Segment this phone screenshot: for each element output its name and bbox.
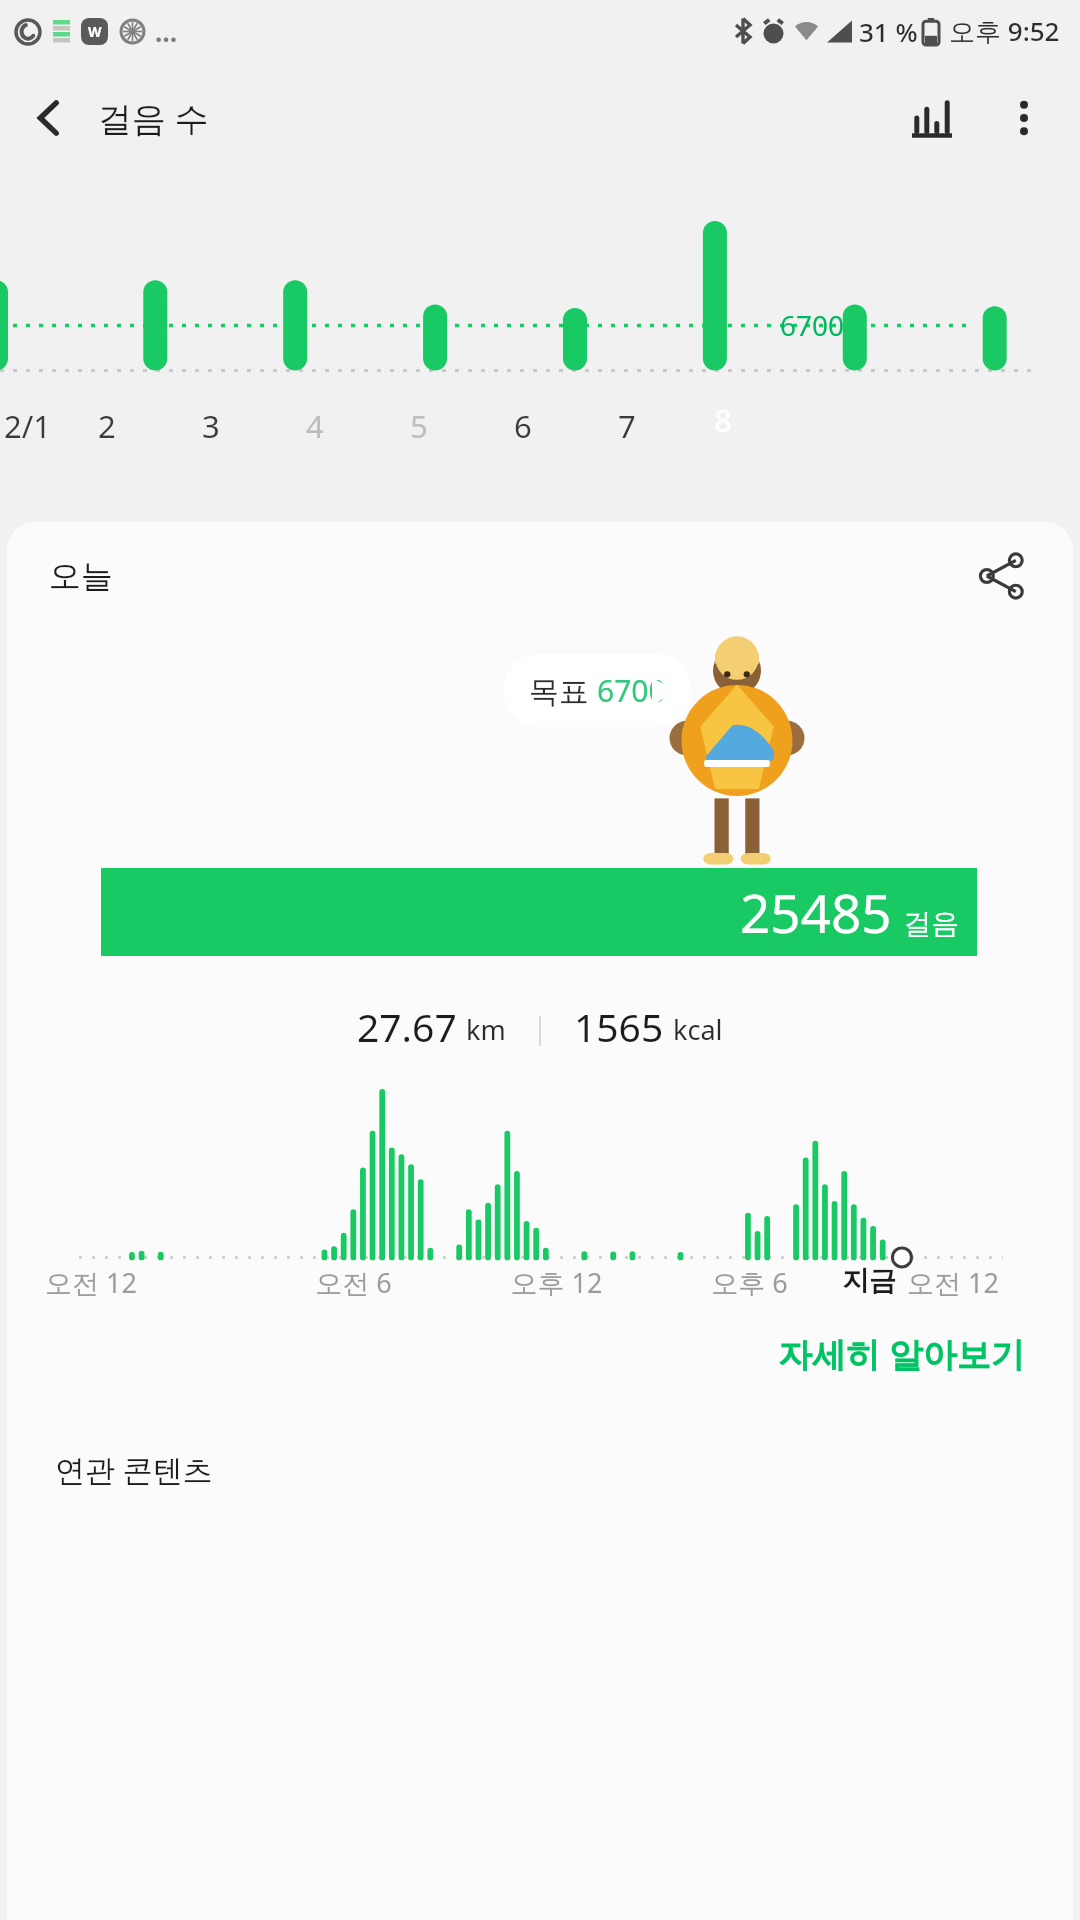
staticText: W <box>88 22 102 41</box>
button[interactable]: 7 <box>575 402 679 450</box>
staticText: 4 <box>306 405 324 447</box>
staticText: 걸음 수 <box>98 95 209 141</box>
staticText: 자세히 알아보기 <box>778 1331 1025 1377</box>
staticText: 오후 12 <box>456 1264 657 1301</box>
staticText: kcal <box>673 1011 723 1048</box>
staticText: 걸음 <box>903 906 959 941</box>
button[interactable]: 6 <box>471 402 575 450</box>
staticText: 오후 9:52 <box>949 13 1060 49</box>
staticText: 2/1 <box>4 405 51 447</box>
staticText: 6700 <box>597 670 666 711</box>
staticText: 27.67 <box>357 1000 457 1053</box>
staticText: 오전 12 <box>907 1264 999 1301</box>
staticText: 25485 <box>740 876 892 948</box>
staticText: 3 <box>202 405 220 447</box>
staticText: 목표 <box>529 670 597 711</box>
staticText: 2 <box>98 405 116 447</box>
staticText: 오전 6 <box>251 1264 456 1301</box>
staticText: 연관 콘텐츠 <box>55 1449 213 1490</box>
button[interactable]: 목표 <box>504 654 691 727</box>
staticText: 오전 12 <box>45 1264 251 1301</box>
button[interactable]: 25485 <box>101 868 977 956</box>
staticText: 지금 <box>842 1264 896 1298</box>
staticText: 6700 <box>780 306 845 344</box>
staticText: 오늘 <box>49 556 113 596</box>
staticText: 31 % <box>859 14 918 49</box>
staticText: 6 <box>514 405 532 447</box>
staticText: 1565 <box>574 1000 664 1053</box>
staticText: 5 <box>410 405 428 447</box>
staticText: km <box>466 1011 506 1048</box>
staticText: … <box>155 14 178 49</box>
button[interactable]: 2/1 <box>0 402 55 450</box>
staticText: 8 <box>714 399 732 441</box>
button[interactable]: 2 <box>55 402 159 450</box>
button[interactable]: 3 <box>159 402 263 450</box>
button[interactable]: Back <box>0 69 98 167</box>
button[interactable]: 4 <box>263 402 367 450</box>
button[interactable]: Chart <box>886 72 978 164</box>
staticText: 7 <box>618 405 636 447</box>
button[interactable]: 자세히 알아보기 <box>772 1321 1031 1387</box>
button[interactable]: Share <box>963 537 1041 615</box>
staticText: 오후 6 <box>657 1264 842 1301</box>
button[interactable]: More options <box>978 72 1070 164</box>
button[interactable]: 5 <box>367 402 471 450</box>
